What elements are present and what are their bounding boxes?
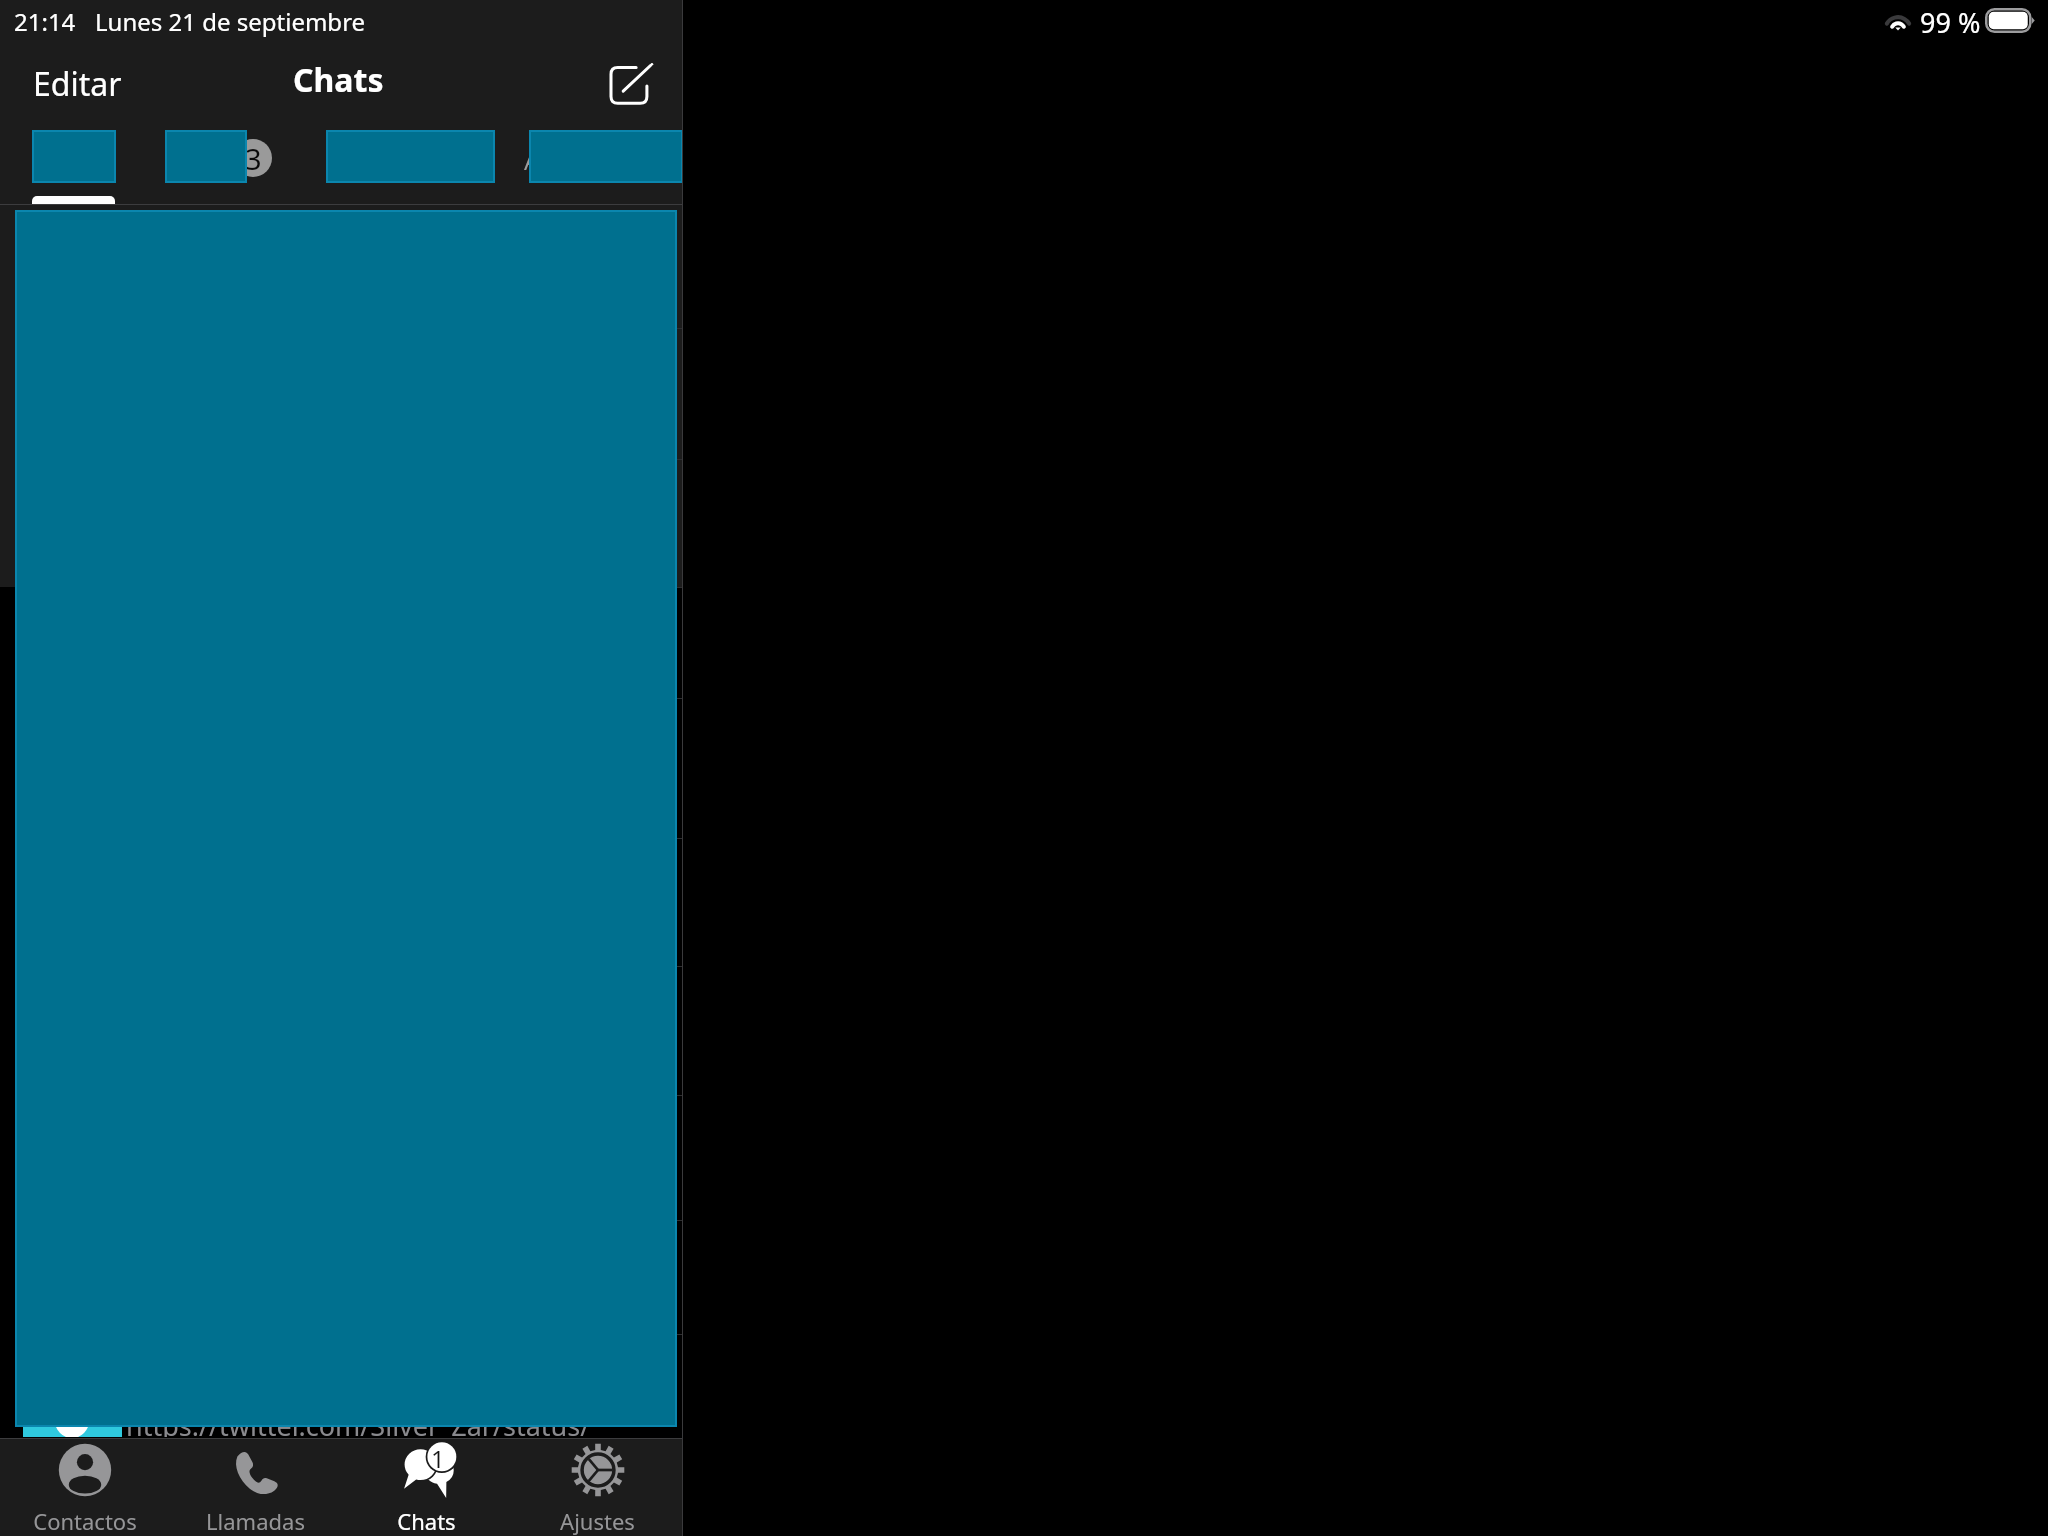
button[interactable]: Tab 2 <box>165 130 247 183</box>
staticText: Chats <box>397 1506 456 1536</box>
staticText: 3 <box>245 139 262 177</box>
other: Wi-Fi signal <box>1883 8 1913 31</box>
staticText: https://twitter.com/Silver_Zar/status/ <box>126 1407 591 1437</box>
button[interactable]: Tab 3 <box>326 130 495 183</box>
staticText: 21:14 <box>14 5 76 38</box>
staticText: Contactos <box>33 1506 137 1536</box>
button[interactable]: Editar <box>33 62 122 106</box>
button[interactable]: Calls <box>170 1443 341 1536</box>
staticText: Chats <box>293 58 384 102</box>
button[interactable]: Compose new message <box>604 56 660 112</box>
button[interactable]: Tab 4 <box>529 130 683 183</box>
button[interactable]: Contacts <box>0 1443 170 1536</box>
staticText: 99 % <box>1920 4 1981 41</box>
button[interactable]: Chats <box>341 1443 512 1536</box>
staticText: Llamadas <box>206 1506 305 1536</box>
button[interactable]: Settings <box>512 1443 683 1536</box>
staticText: 1 <box>431 1442 445 1475</box>
staticText: Lunes 21 de septiembre <box>95 5 366 38</box>
staticText: Editar <box>33 62 122 106</box>
button[interactable]: Tab 1 <box>32 130 116 183</box>
other: Battery 99 percent <box>1985 8 2035 33</box>
staticText: Ajustes <box>560 1506 635 1536</box>
staticText: A <box>524 144 540 177</box>
